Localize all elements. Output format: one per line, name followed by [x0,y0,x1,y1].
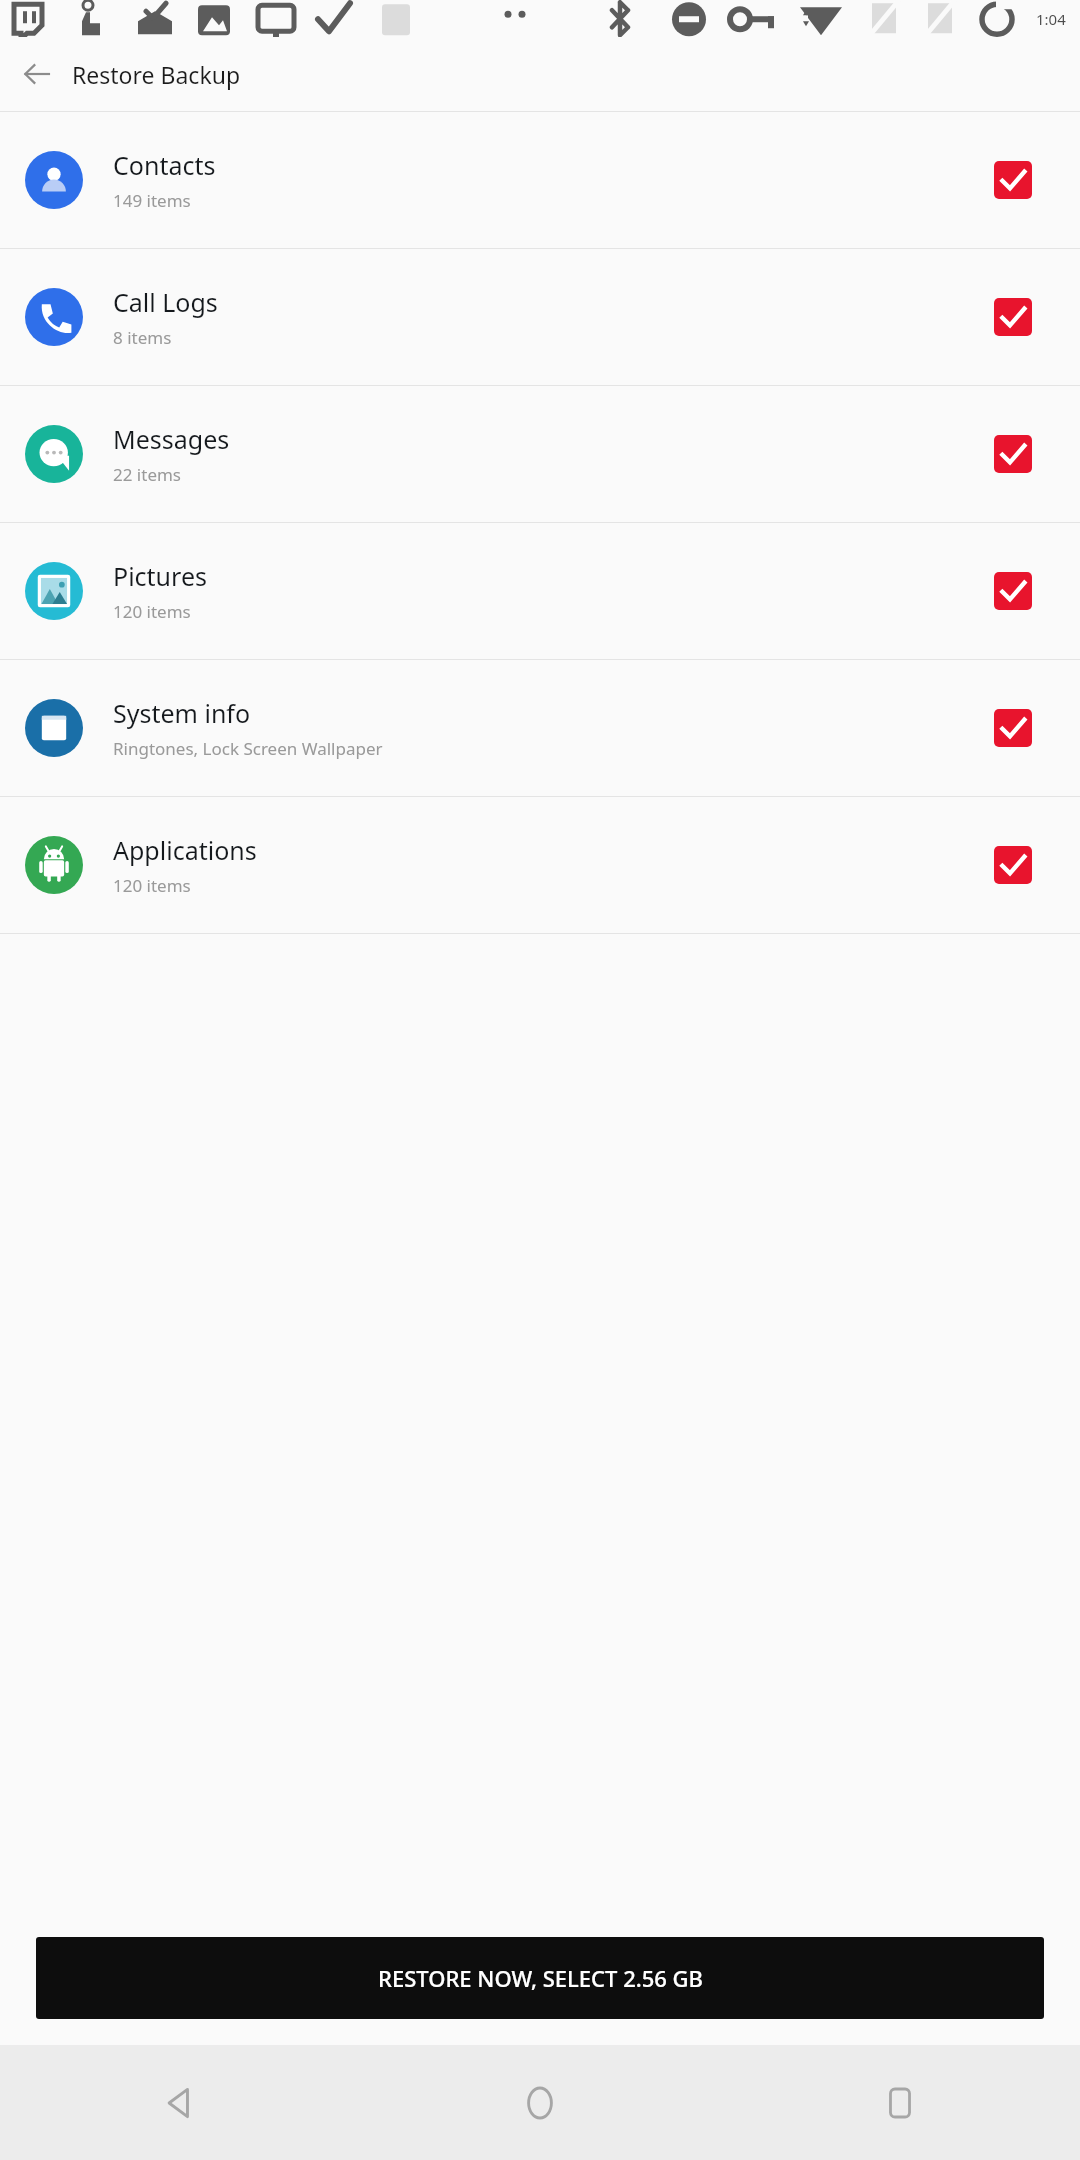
staticText: Messages [113,422,230,456]
button[interactable]: Messages [0,386,1080,522]
button[interactable]: System info [0,660,1080,796]
staticText: RESTORE NOW, SELECT 2.56 GB [378,1963,703,1993]
staticText: Ringtones, Lock Screen Wallpaper [113,737,383,760]
button[interactable]: Recents [720,2045,1080,2160]
staticText: Contacts [113,148,216,182]
button[interactable]: Back [0,2045,360,2160]
staticText: 1:04 [1036,9,1066,29]
button[interactable]: Toggle Pictures [991,569,1035,613]
staticText: 120 items [113,874,191,897]
button[interactable]: Toggle Contacts [991,158,1035,202]
button[interactable]: Toggle Applications [991,843,1035,887]
button[interactable]: Toggle Call Logs [991,295,1035,339]
button[interactable]: Call Logs [0,249,1080,385]
staticText: 120 items [113,600,191,623]
button[interactable]: Toggle Messages [991,432,1035,476]
staticText: Restore Backup [72,59,241,90]
staticText: Call Logs [113,285,218,319]
button[interactable]: Contacts [0,112,1080,248]
staticText: 149 items [113,189,191,212]
button[interactable]: Toggle System info [991,706,1035,750]
button[interactable]: Back [10,47,64,101]
staticText: 8 items [113,326,172,349]
button[interactable]: Applications [0,797,1080,933]
staticText: Applications [113,833,257,867]
staticText: System info [113,696,251,730]
button[interactable]: Home [360,2045,720,2160]
button[interactable]: Pictures [0,523,1080,659]
staticText: 22 items [113,463,182,486]
staticText: Pictures [113,559,207,593]
button[interactable]: RESTORE NOW, SELECT 2.56 GB [36,1937,1044,2019]
